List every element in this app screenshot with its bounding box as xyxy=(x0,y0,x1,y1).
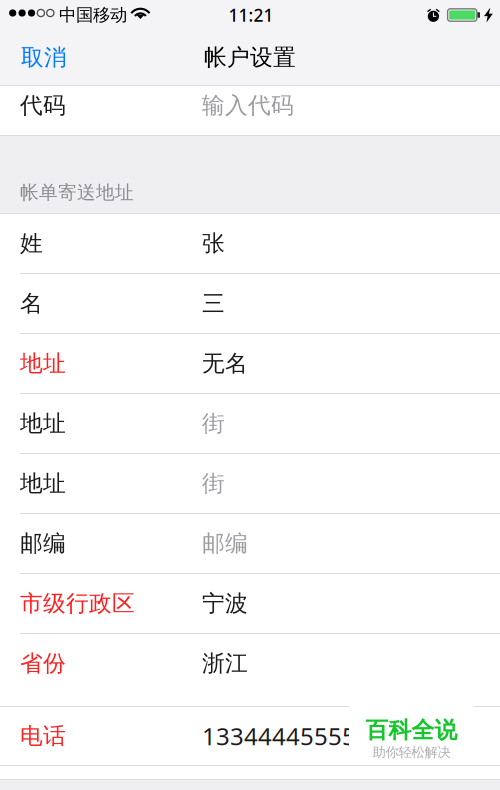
button[interactable]: 取消 xyxy=(0,30,110,85)
button[interactable]: 邮编 xyxy=(0,514,500,573)
button[interactable]: 地址 xyxy=(0,454,500,513)
staticText: 电话 xyxy=(20,722,66,750)
staticText: 市级行政区 xyxy=(20,590,135,617)
staticText: 邮编 xyxy=(20,530,66,557)
staticText: 帐户设置 xyxy=(204,44,296,71)
staticText: 三 xyxy=(202,290,225,317)
button[interactable]: 电话 xyxy=(0,707,500,765)
staticText: 百科全说 xyxy=(365,716,457,744)
staticText: 代码 xyxy=(20,92,66,119)
staticText: 邮编 xyxy=(202,530,248,557)
button[interactable]: 代码 xyxy=(0,86,500,135)
staticText: 街 xyxy=(202,410,225,437)
staticText: 地址 xyxy=(20,410,66,437)
staticText: 11:21 xyxy=(228,3,273,26)
staticText: 中国移动 xyxy=(59,4,127,26)
staticText: 省份 xyxy=(20,650,66,677)
button[interactable]: 姓 xyxy=(0,214,500,273)
staticText: 帐单寄送地址 xyxy=(20,181,134,204)
staticText: 宁波 xyxy=(202,590,248,617)
button[interactable]: 名 xyxy=(0,274,500,333)
staticText: 地址 xyxy=(20,470,66,497)
button[interactable]: 市级行政区 xyxy=(0,574,500,633)
button[interactable]: 省份 xyxy=(0,634,500,693)
staticText: 姓 xyxy=(20,230,43,257)
staticText: 地址 xyxy=(20,350,66,377)
staticText: 名 xyxy=(20,290,43,317)
staticText: 浙江 xyxy=(202,650,248,677)
staticText: 输入代码 xyxy=(202,92,294,119)
button[interactable]: 地址 xyxy=(0,334,500,393)
staticText: 街 xyxy=(202,470,225,497)
staticText: 助你轻松解决 xyxy=(372,744,450,761)
staticText: 无名 xyxy=(202,350,248,377)
button[interactable]: 地址 xyxy=(0,394,500,453)
staticText: 13344445555 xyxy=(202,720,356,752)
staticText: 取消 xyxy=(21,44,67,71)
staticText: 张 xyxy=(202,230,225,257)
